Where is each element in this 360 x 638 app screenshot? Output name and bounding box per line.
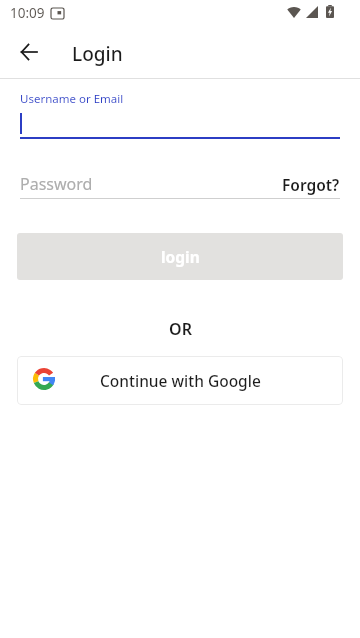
button[interactable]: login <box>17 233 343 280</box>
staticText: login <box>161 246 200 267</box>
staticText: OR <box>169 318 192 336</box>
button[interactable]: Back <box>9 32 49 72</box>
staticText: Username or Email <box>20 91 124 107</box>
staticText: Forgot? <box>282 174 340 195</box>
staticText: 10:09 <box>10 4 45 22</box>
button[interactable]: Continue with Google <box>17 356 343 405</box>
staticText: Password <box>20 173 93 195</box>
staticText: Continue with Google <box>100 370 261 391</box>
staticText: Login <box>72 41 123 67</box>
button[interactable]: Forgot? <box>282 174 340 195</box>
